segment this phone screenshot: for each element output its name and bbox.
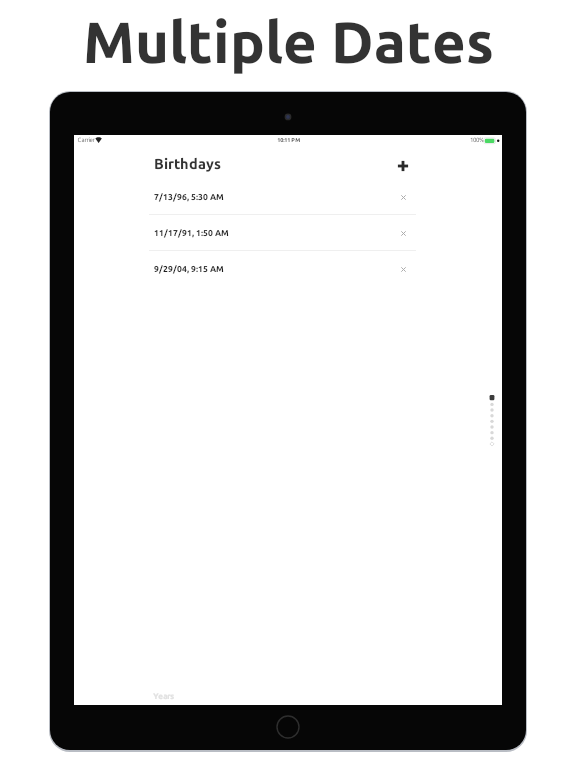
button[interactable]: Remove date — [396, 226, 410, 240]
button[interactable]: 7/13/96, 5:30 AM — [149, 179, 416, 215]
other: Years — [149, 689, 209, 703]
button[interactable]: Remove date — [396, 190, 410, 204]
button[interactable]: Remove date — [396, 262, 410, 276]
button[interactable]: 9/29/04, 9:15 AM — [149, 251, 416, 286]
other: Carrier, 10:11 PM, battery 100% — [74, 135, 502, 147]
button[interactable]: 11/17/91, 1:50 AM — [149, 215, 416, 251]
button[interactable]: Add date — [393, 156, 413, 176]
other: Multiple Dates — [0, 0, 576, 92]
